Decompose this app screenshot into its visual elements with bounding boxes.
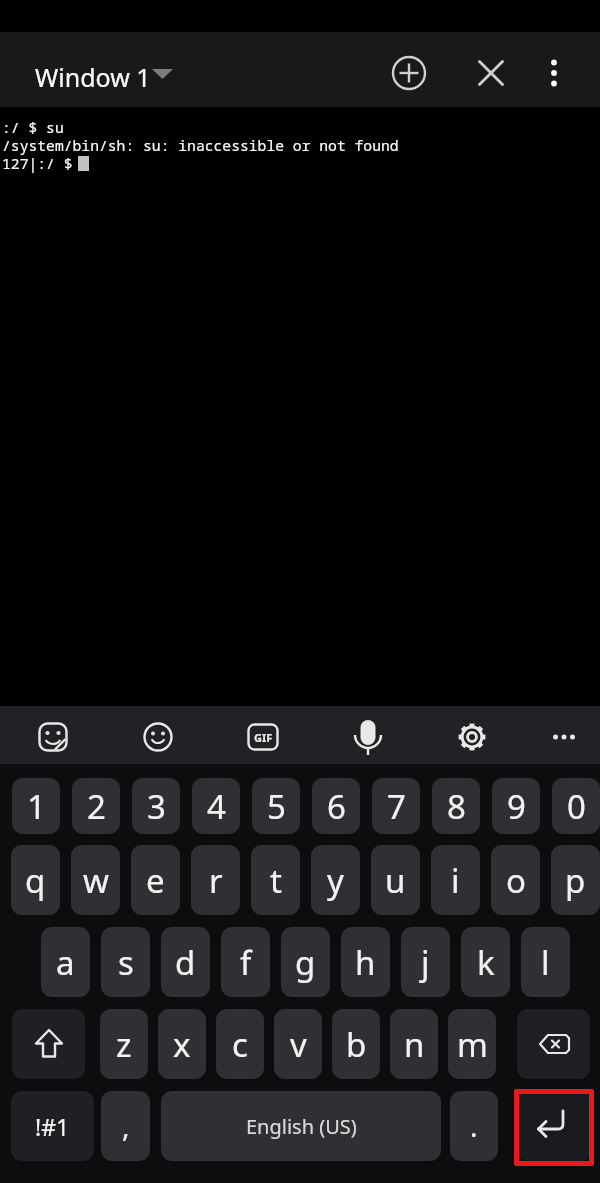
staticText: v bbox=[290, 1022, 307, 1067]
button[interactable]: , bbox=[101, 1091, 150, 1161]
button[interactable]: r bbox=[191, 845, 240, 915]
button[interactable] bbox=[546, 719, 582, 755]
button[interactable]: 4 bbox=[192, 778, 240, 834]
button[interactable]: 6 bbox=[312, 778, 360, 834]
button[interactable]: !#1 bbox=[11, 1091, 94, 1161]
staticText: p bbox=[565, 858, 586, 903]
staticText: 2 bbox=[87, 784, 106, 829]
button[interactable]: l bbox=[521, 927, 570, 997]
button[interactable]: a bbox=[41, 927, 90, 997]
staticText: s bbox=[118, 940, 134, 985]
staticText: n bbox=[404, 1022, 425, 1067]
staticText: GIF bbox=[254, 730, 273, 745]
staticText: x bbox=[173, 1022, 191, 1067]
button[interactable]: t bbox=[251, 845, 300, 915]
button[interactable]: 2 bbox=[72, 778, 120, 834]
button[interactable]: o bbox=[491, 845, 540, 915]
button[interactable] bbox=[517, 1009, 590, 1079]
staticText: j bbox=[421, 940, 430, 985]
staticText: 1 bbox=[27, 784, 46, 829]
staticText: e bbox=[146, 858, 165, 903]
staticText: o bbox=[506, 858, 526, 903]
button[interactable]: English (US) bbox=[161, 1091, 441, 1161]
staticText: d bbox=[175, 940, 196, 985]
button[interactable] bbox=[12, 1009, 85, 1079]
button[interactable]: 1 bbox=[12, 778, 60, 834]
button[interactable]: y bbox=[311, 845, 360, 915]
staticText: g bbox=[295, 940, 316, 985]
button[interactable] bbox=[35, 719, 71, 755]
button[interactable]: j bbox=[401, 927, 450, 997]
staticText: English (US) bbox=[246, 1113, 357, 1140]
staticText: l bbox=[541, 940, 550, 985]
button[interactable]: GIF bbox=[247, 723, 279, 751]
staticText: m bbox=[457, 1022, 488, 1067]
button[interactable]: 7 bbox=[372, 778, 420, 834]
button[interactable]: 5 bbox=[252, 778, 300, 834]
button[interactable]: z bbox=[100, 1009, 148, 1079]
button[interactable]: q bbox=[11, 845, 60, 915]
button[interactable] bbox=[534, 53, 574, 93]
staticText: y bbox=[327, 858, 344, 903]
button[interactable]: s bbox=[101, 927, 150, 997]
button[interactable]: v bbox=[274, 1009, 322, 1079]
staticText: 8 bbox=[447, 784, 466, 829]
staticText: r bbox=[209, 858, 223, 903]
button[interactable] bbox=[452, 717, 492, 757]
staticText: 4 bbox=[207, 784, 226, 829]
button[interactable]: w bbox=[71, 845, 120, 915]
button[interactable]: p bbox=[551, 845, 600, 915]
staticText: Window 1 bbox=[35, 60, 151, 94]
button[interactable]: h bbox=[341, 927, 390, 997]
staticText: 9 bbox=[507, 784, 526, 829]
staticText: z bbox=[116, 1022, 132, 1067]
button[interactable]: e bbox=[131, 845, 180, 915]
button[interactable]: b bbox=[332, 1009, 380, 1079]
staticText: h bbox=[355, 940, 376, 985]
staticText: !#1 bbox=[35, 1111, 70, 1142]
staticText: f bbox=[240, 940, 252, 985]
staticText: w bbox=[83, 858, 109, 903]
staticText: 0 bbox=[567, 784, 586, 829]
button[interactable]: g bbox=[281, 927, 330, 997]
button[interactable]: c bbox=[216, 1009, 264, 1079]
button[interactable]: k bbox=[461, 927, 510, 997]
button[interactable] bbox=[150, 62, 174, 86]
button[interactable]: d bbox=[161, 927, 210, 997]
button[interactable]: i bbox=[431, 845, 480, 915]
button[interactable] bbox=[471, 53, 511, 93]
staticText: 5 bbox=[267, 784, 286, 829]
button[interactable] bbox=[140, 719, 176, 755]
button[interactable]: m bbox=[448, 1009, 496, 1079]
staticText: 3 bbox=[147, 784, 166, 829]
button[interactable] bbox=[346, 715, 390, 759]
staticText: i bbox=[451, 858, 460, 903]
button[interactable] bbox=[517, 1091, 591, 1161]
staticText: u bbox=[385, 858, 406, 903]
button[interactable] bbox=[25, 45, 185, 95]
button[interactable]: . bbox=[450, 1091, 498, 1161]
button[interactable]: f bbox=[221, 927, 270, 997]
staticText: k bbox=[477, 940, 495, 985]
button[interactable]: 9 bbox=[492, 778, 540, 834]
button[interactable]: u bbox=[371, 845, 420, 915]
button[interactable] bbox=[389, 53, 429, 93]
staticText: b bbox=[346, 1022, 367, 1067]
staticText: q bbox=[25, 858, 46, 903]
button[interactable]: 3 bbox=[132, 778, 180, 834]
staticText: . bbox=[470, 1107, 478, 1145]
staticText: c bbox=[232, 1022, 248, 1067]
staticText: t bbox=[270, 858, 282, 903]
staticText: 127|:/ $ bbox=[2, 153, 73, 173]
button[interactable]: 0 bbox=[552, 778, 600, 834]
button[interactable]: x bbox=[158, 1009, 206, 1079]
button[interactable]: 8 bbox=[432, 778, 480, 834]
staticText: /system/bin/sh: su: inaccessible or not … bbox=[2, 135, 399, 155]
button[interactable]: n bbox=[390, 1009, 438, 1079]
staticText: 6 bbox=[327, 784, 346, 829]
staticText: , bbox=[122, 1107, 130, 1145]
staticText: a bbox=[56, 940, 75, 985]
staticText: :/ $ su bbox=[2, 117, 64, 137]
staticText: 7 bbox=[387, 784, 406, 829]
